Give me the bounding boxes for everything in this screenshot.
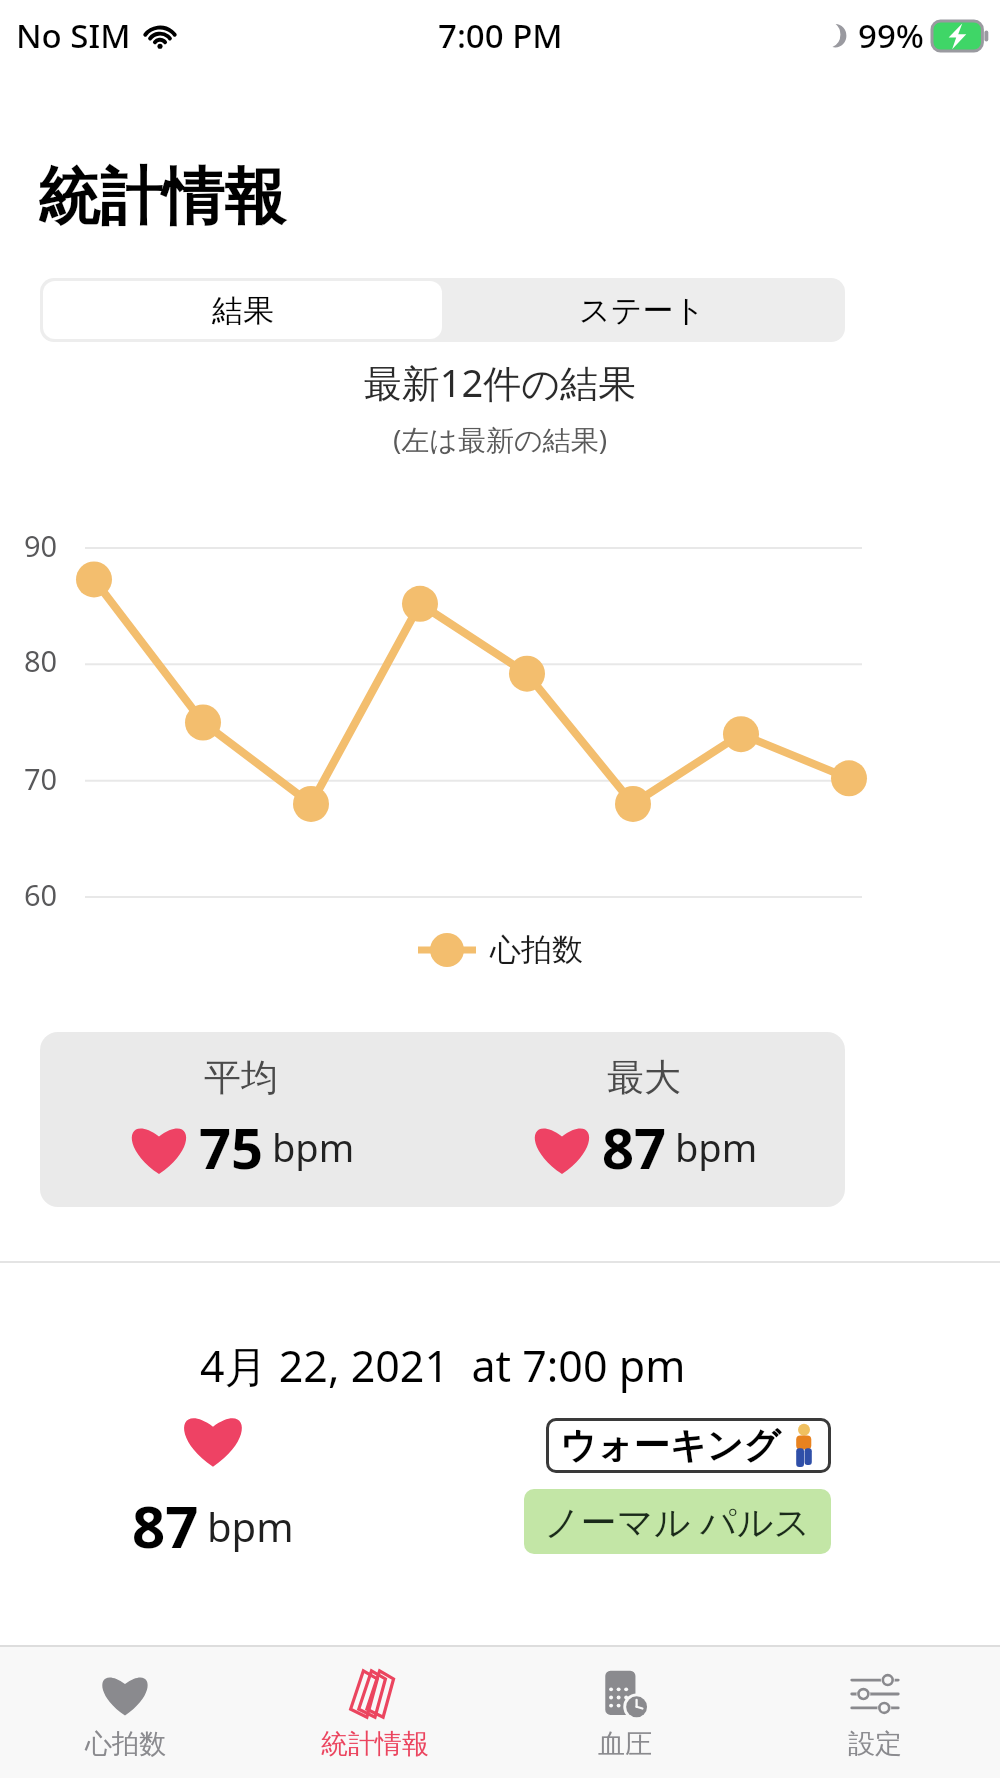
staticText: 80 (24, 641, 58, 680)
staticText: 99% (858, 13, 924, 58)
staticText: 統計情報 (321, 1727, 429, 1761)
button[interactable]: 結果 (43, 281, 442, 339)
staticText: ウォーキング (560, 1423, 781, 1468)
staticText: 87 (132, 1486, 199, 1565)
staticText: 平均 (204, 1054, 278, 1101)
staticText: ステート (579, 291, 706, 330)
staticText: No SIM (16, 13, 131, 58)
button[interactable]: 統計情報 (250, 1647, 500, 1778)
staticText: bpm (272, 1121, 355, 1173)
staticText: 血圧 (598, 1727, 652, 1761)
button[interactable]: ウォーキング (560, 1423, 817, 1468)
staticText: bpm (675, 1121, 758, 1173)
staticText: ノーマル パルス (544, 1497, 811, 1546)
staticText: 統計情報 (38, 158, 286, 236)
staticText: 最新12件の結果 (0, 356, 1000, 408)
staticText: 最大 (607, 1054, 681, 1101)
staticText: 心拍数 (85, 1727, 166, 1761)
button[interactable]: 4月 22, 2021 at 7:00 pm (40, 1292, 845, 1608)
button[interactable]: ステート (442, 281, 842, 339)
staticText: (左は最新の結果) (0, 420, 1000, 458)
button[interactable]: 血圧 (500, 1647, 750, 1778)
staticText: 75 (199, 1109, 264, 1185)
staticText: 90 (24, 526, 58, 565)
button[interactable]: 設定 (750, 1647, 1000, 1778)
staticText: 70 (24, 759, 58, 798)
staticText: bpm (207, 1499, 294, 1553)
staticText: 心拍数 (490, 930, 583, 969)
button[interactable]: 平均 (40, 1032, 845, 1207)
staticText: 4月 22, 2021 at 7:00 pm (200, 1336, 686, 1395)
staticText: 7:00 PM (438, 13, 563, 58)
staticText: 60 (24, 875, 58, 914)
button[interactable]: 心拍数 (0, 1647, 250, 1778)
button[interactable]: ノーマル パルス (544, 1497, 811, 1546)
staticText: 結果 (212, 291, 274, 330)
staticText: 設定 (848, 1727, 902, 1761)
staticText: 87 (602, 1109, 667, 1185)
